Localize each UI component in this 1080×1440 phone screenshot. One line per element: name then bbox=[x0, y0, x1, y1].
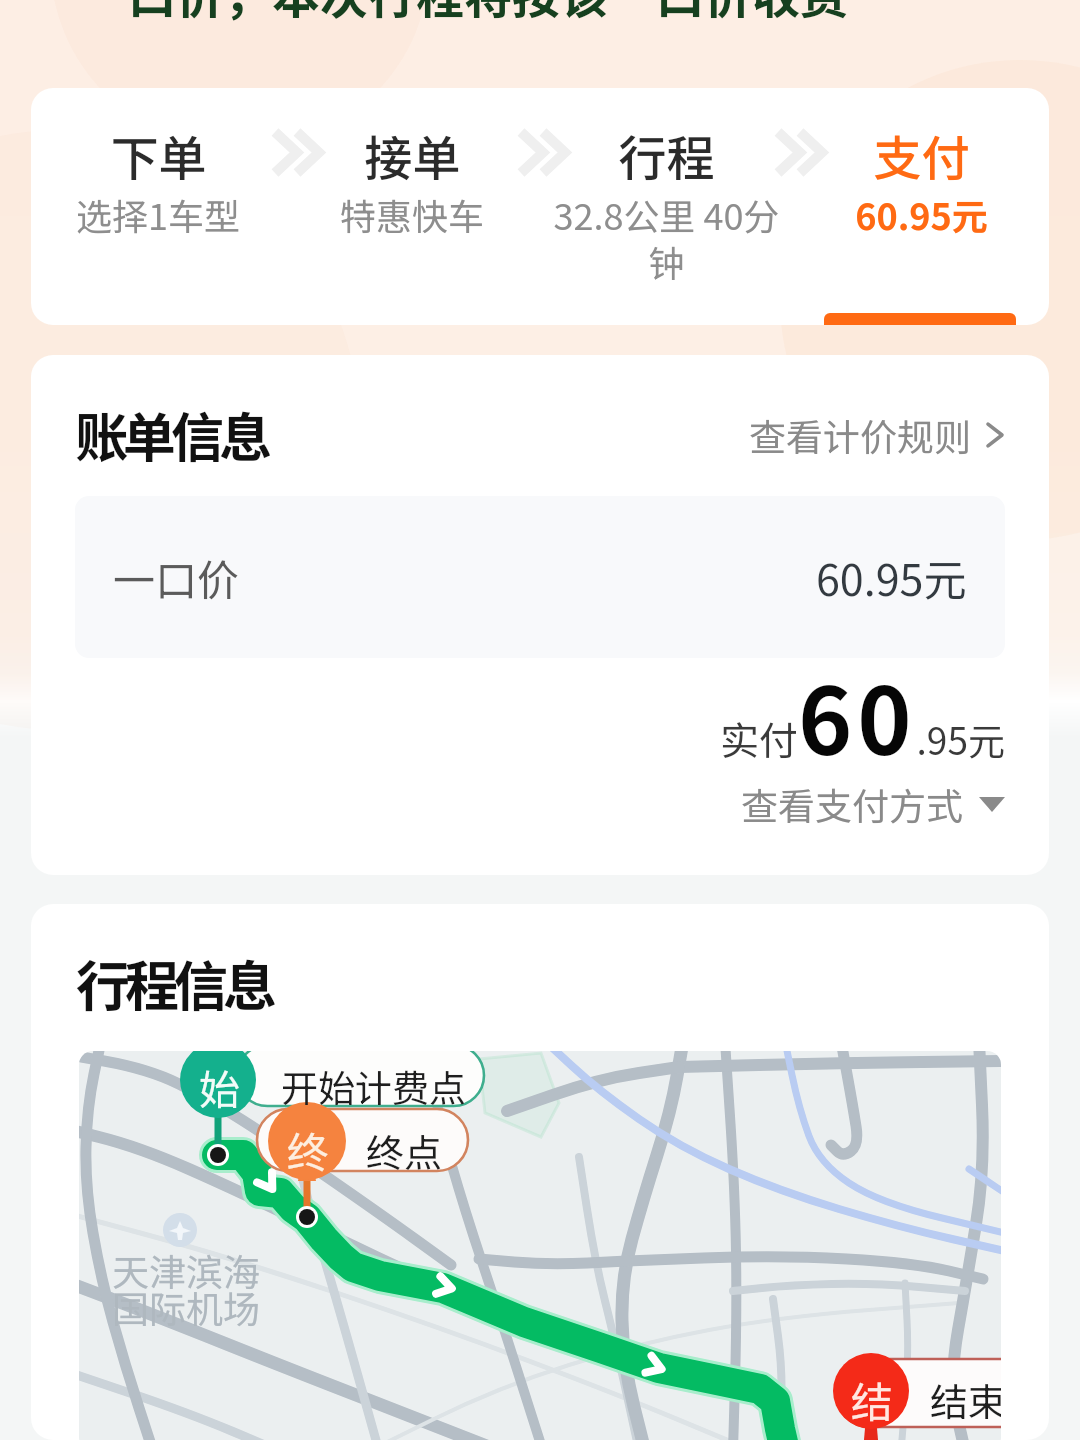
button[interactable]: 查看支付方式 bbox=[75, 777, 1005, 831]
staticText: 终点 bbox=[366, 1123, 443, 1178]
button[interactable]: 接单 bbox=[285, 88, 539, 242]
staticText: 结 bbox=[851, 1369, 894, 1430]
staticText: 开始计费点 bbox=[281, 1059, 466, 1113]
staticText: 结束· bbox=[930, 1372, 1001, 1427]
staticText: 口价，本次行程将按该一口价收费 bbox=[128, 0, 849, 28]
staticText: 32.8公里 40分钟 bbox=[539, 188, 794, 288]
staticText: 60.95元 bbox=[816, 546, 967, 608]
staticText: 查看计价规则 bbox=[749, 408, 971, 462]
button[interactable]: Trip route map bbox=[79, 1051, 1001, 1440]
staticText: 选择1车型 bbox=[31, 188, 285, 240]
staticText: 下单 bbox=[110, 120, 207, 190]
staticText: 终 bbox=[287, 1119, 330, 1180]
staticText: 账单信息 bbox=[75, 396, 267, 473]
staticText: 实付60.95元 bbox=[720, 648, 1005, 781]
staticText: 行程 bbox=[618, 120, 715, 190]
staticText: 接单 bbox=[364, 120, 461, 190]
staticText: 行程信息 bbox=[76, 943, 272, 1021]
staticText: 天津滨海 国际机场 bbox=[112, 1243, 260, 1334]
button[interactable]: 查看计价规则 bbox=[749, 408, 1005, 462]
button[interactable]: 下单 bbox=[31, 88, 285, 242]
staticText: 特惠快车 bbox=[285, 188, 539, 240]
staticText: 支付 bbox=[873, 120, 970, 190]
button[interactable]: 行程 bbox=[539, 88, 794, 290]
staticText: 60.95元 bbox=[794, 188, 1049, 240]
staticText: 一口价 bbox=[113, 547, 240, 608]
button[interactable]: 支付 bbox=[794, 88, 1049, 242]
staticText: 查看支付方式 bbox=[741, 777, 963, 831]
staticText: 始 bbox=[199, 1057, 240, 1116]
